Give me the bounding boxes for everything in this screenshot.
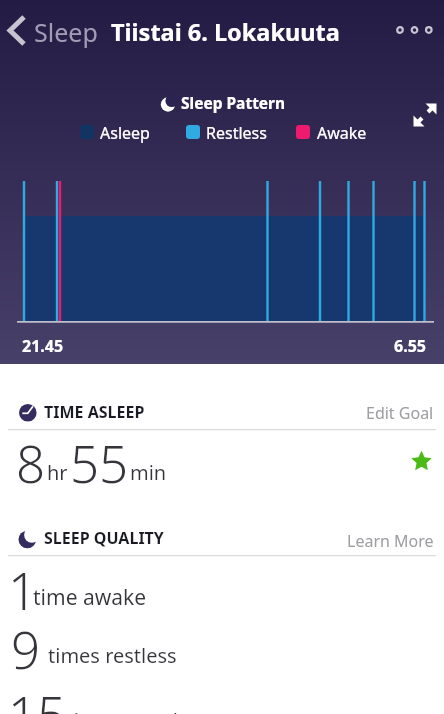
button[interactable] — [388, 14, 444, 46]
staticText: time awake — [33, 583, 147, 612]
button[interactable]: Edit Goal — [348, 400, 434, 426]
staticText: Sleep Pattern — [181, 92, 286, 113]
staticText: 9 — [11, 614, 41, 683]
staticText: 55 — [70, 428, 129, 497]
staticText: 21.45 — [22, 335, 64, 357]
staticText: Restless — [206, 122, 267, 144]
staticText: 6.55 — [394, 335, 426, 357]
staticText: Asleep — [100, 122, 150, 144]
button[interactable] — [406, 96, 444, 134]
staticText: 8 — [16, 428, 46, 497]
staticText: SLEEP QUALITY — [44, 527, 164, 549]
staticText: hr — [47, 459, 68, 486]
staticText: Edit Goal — [366, 402, 434, 424]
button[interactable] — [0, 8, 102, 52]
staticText: min — [130, 459, 167, 486]
staticText: times restless — [48, 642, 177, 669]
staticText: Sleep — [34, 15, 98, 49]
button[interactable]: Learn More — [328, 528, 434, 554]
staticText: Awake — [317, 122, 367, 144]
staticText: 15 — [8, 679, 67, 714]
staticText: Tiistai 6. Lokakuuta — [111, 16, 340, 48]
staticText: TIME ASLEEP — [44, 401, 145, 423]
staticText: minutes restless — [55, 707, 209, 714]
staticText: Learn More — [347, 530, 434, 552]
staticText: 1 — [8, 555, 38, 624]
